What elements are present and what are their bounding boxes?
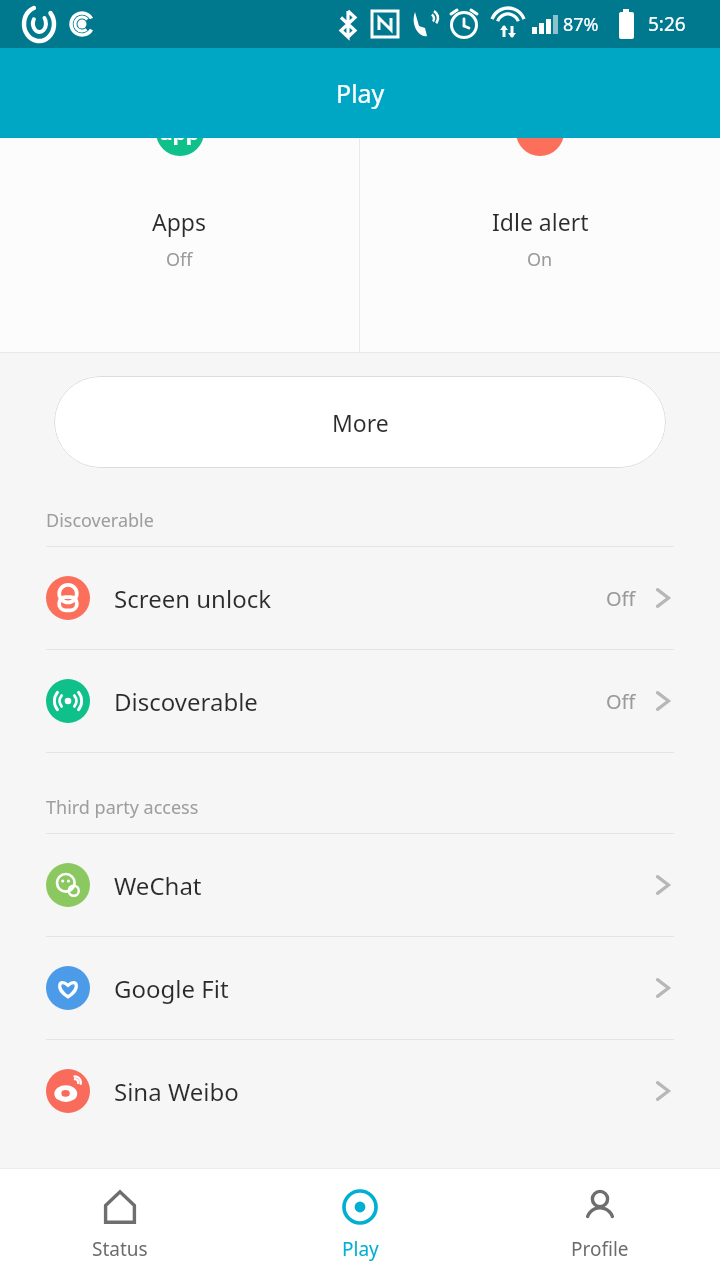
staticText: Discoverable [46, 508, 154, 533]
staticText: Idle alert [492, 206, 589, 237]
staticText: Profile [571, 1236, 629, 1262]
button[interactable]: Google Fit [0, 937, 720, 1039]
button[interactable]: Idle alert [360, 138, 720, 353]
staticText: Off [606, 688, 636, 715]
staticText: More [332, 407, 389, 438]
other: Status [100, 1187, 140, 1227]
button[interactable]: Screen unlock [0, 547, 720, 649]
staticText: Third party access [46, 795, 199, 820]
staticText: Play [342, 1236, 379, 1262]
staticText: Screen unlock [114, 582, 271, 615]
button[interactable]: Status [0, 1169, 240, 1280]
other: Profile [580, 1187, 620, 1227]
staticText: Discoverable [114, 685, 258, 718]
staticText: 87% [563, 12, 599, 37]
staticText: Off [166, 247, 193, 272]
button[interactable]: WeChat [0, 834, 720, 936]
staticText: Play [336, 76, 385, 110]
staticText: Sina Weibo [114, 1075, 239, 1108]
button[interactable]: Sina Weibo [0, 1040, 720, 1142]
other: Play [340, 1187, 380, 1227]
staticText: Google Fit [114, 972, 229, 1005]
staticText: app [160, 138, 200, 147]
button[interactable]: Discoverable [0, 650, 720, 752]
staticText: Status [92, 1236, 148, 1262]
staticText: WeChat [114, 869, 202, 902]
staticText: 5:26 [648, 11, 686, 37]
button[interactable]: Play [240, 1169, 480, 1280]
button[interactable]: Profile [480, 1169, 720, 1280]
staticText: On [527, 247, 553, 272]
button[interactable]: More [54, 376, 666, 468]
staticText: Apps [152, 206, 207, 237]
staticText: Off [606, 585, 636, 612]
button[interactable]: app [0, 138, 359, 353]
